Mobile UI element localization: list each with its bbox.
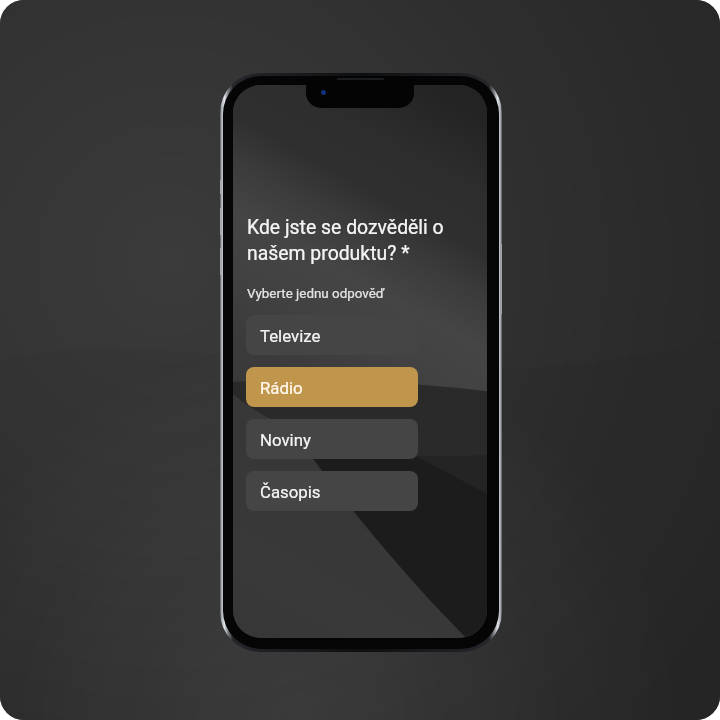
- staticText: Vyberte jednu odpověď: [247, 286, 385, 302]
- staticText: Rádio: [260, 378, 303, 398]
- staticText: Noviny: [260, 430, 311, 450]
- button[interactable]: Televize: [246, 315, 418, 355]
- staticText: Časopis: [260, 482, 321, 502]
- button[interactable]: Noviny: [246, 419, 418, 459]
- staticText: Televize: [260, 326, 321, 346]
- button[interactable]: Rádio: [246, 367, 418, 407]
- button[interactable]: Časopis: [246, 471, 418, 511]
- staticText: Kde jste se dozvěděli o našem produktu? …: [247, 216, 444, 265]
